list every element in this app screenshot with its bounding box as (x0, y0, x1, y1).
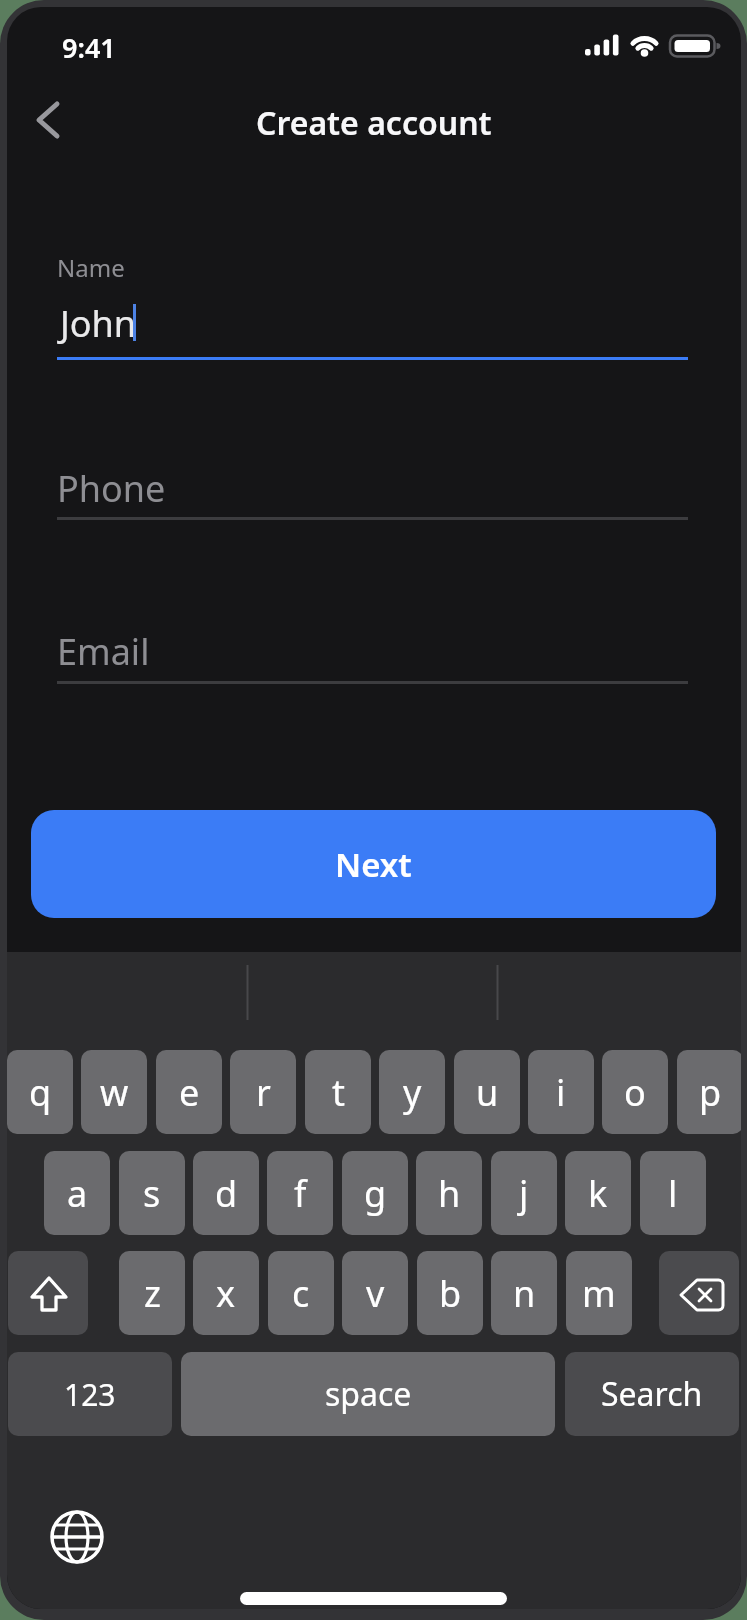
button[interactable] (49, 1509, 105, 1565)
staticText: s (143, 1169, 161, 1218)
staticText: o (624, 1068, 646, 1117)
button[interactable]: Search (565, 1352, 739, 1436)
button[interactable]: g (342, 1151, 408, 1235)
button[interactable]: o (602, 1050, 668, 1134)
staticText: x (216, 1269, 236, 1318)
staticText: t (332, 1068, 345, 1117)
staticText: Next (335, 842, 412, 887)
staticText: Phone (57, 464, 166, 513)
button[interactable]: d (193, 1151, 259, 1235)
staticText: 123 (64, 1374, 116, 1415)
staticText: r (256, 1068, 271, 1117)
button[interactable]: m (566, 1251, 632, 1335)
staticText: b (439, 1269, 462, 1318)
staticText: k (588, 1169, 608, 1218)
staticText: q (29, 1068, 52, 1117)
staticText: n (513, 1269, 536, 1318)
button[interactable]: x (193, 1251, 259, 1335)
staticText: h (438, 1169, 461, 1218)
button[interactable] (57, 618, 688, 684)
staticText: c (292, 1269, 310, 1318)
staticText: space (325, 1372, 412, 1416)
button[interactable]: v (342, 1251, 408, 1335)
button[interactable]: e (156, 1050, 222, 1134)
button[interactable]: c (268, 1251, 334, 1335)
staticText: e (179, 1068, 200, 1117)
button[interactable] (8, 1251, 88, 1335)
button[interactable]: space (181, 1352, 555, 1436)
button[interactable]: a (44, 1151, 110, 1235)
button[interactable]: w (81, 1050, 147, 1134)
staticText: Search (601, 1372, 703, 1416)
button[interactable]: l (640, 1151, 706, 1235)
button[interactable]: s (119, 1151, 185, 1235)
staticText: g (364, 1169, 387, 1218)
button[interactable]: b (417, 1251, 483, 1335)
button[interactable] (23, 91, 87, 155)
staticText: w (100, 1068, 129, 1117)
button[interactable]: k (565, 1151, 631, 1235)
staticText: j (519, 1169, 529, 1218)
staticText: a (67, 1169, 88, 1218)
button[interactable] (57, 245, 688, 361)
button[interactable]: Next (31, 810, 716, 918)
staticText: Create account (256, 101, 492, 145)
staticText: v (366, 1269, 385, 1318)
staticText: m (582, 1269, 616, 1318)
button[interactable]: u (454, 1050, 520, 1134)
button[interactable]: y (379, 1050, 445, 1134)
button[interactable]: f (267, 1151, 333, 1235)
staticText: i (556, 1068, 566, 1117)
button[interactable]: h (416, 1151, 482, 1235)
button[interactable]: 123 (8, 1352, 172, 1436)
button[interactable]: n (491, 1251, 557, 1335)
button[interactable]: j (491, 1151, 557, 1235)
staticText: 9:41 (62, 29, 116, 66)
staticText: Name (57, 251, 125, 284)
staticText: John (60, 299, 137, 348)
staticText: p (699, 1068, 722, 1117)
button[interactable]: p (677, 1050, 741, 1134)
staticText: Email (57, 627, 150, 676)
button[interactable]: t (305, 1050, 371, 1134)
staticText: l (668, 1169, 678, 1218)
button[interactable] (659, 1251, 739, 1335)
button[interactable]: z (119, 1251, 185, 1335)
staticText: f (294, 1169, 307, 1218)
staticText: u (476, 1068, 499, 1117)
staticText: z (144, 1269, 161, 1318)
staticText: d (215, 1169, 238, 1218)
button[interactable] (57, 455, 688, 521)
staticText: y (403, 1068, 422, 1117)
button[interactable]: i (528, 1050, 594, 1134)
button[interactable]: q (7, 1050, 73, 1134)
button[interactable]: r (230, 1050, 296, 1134)
